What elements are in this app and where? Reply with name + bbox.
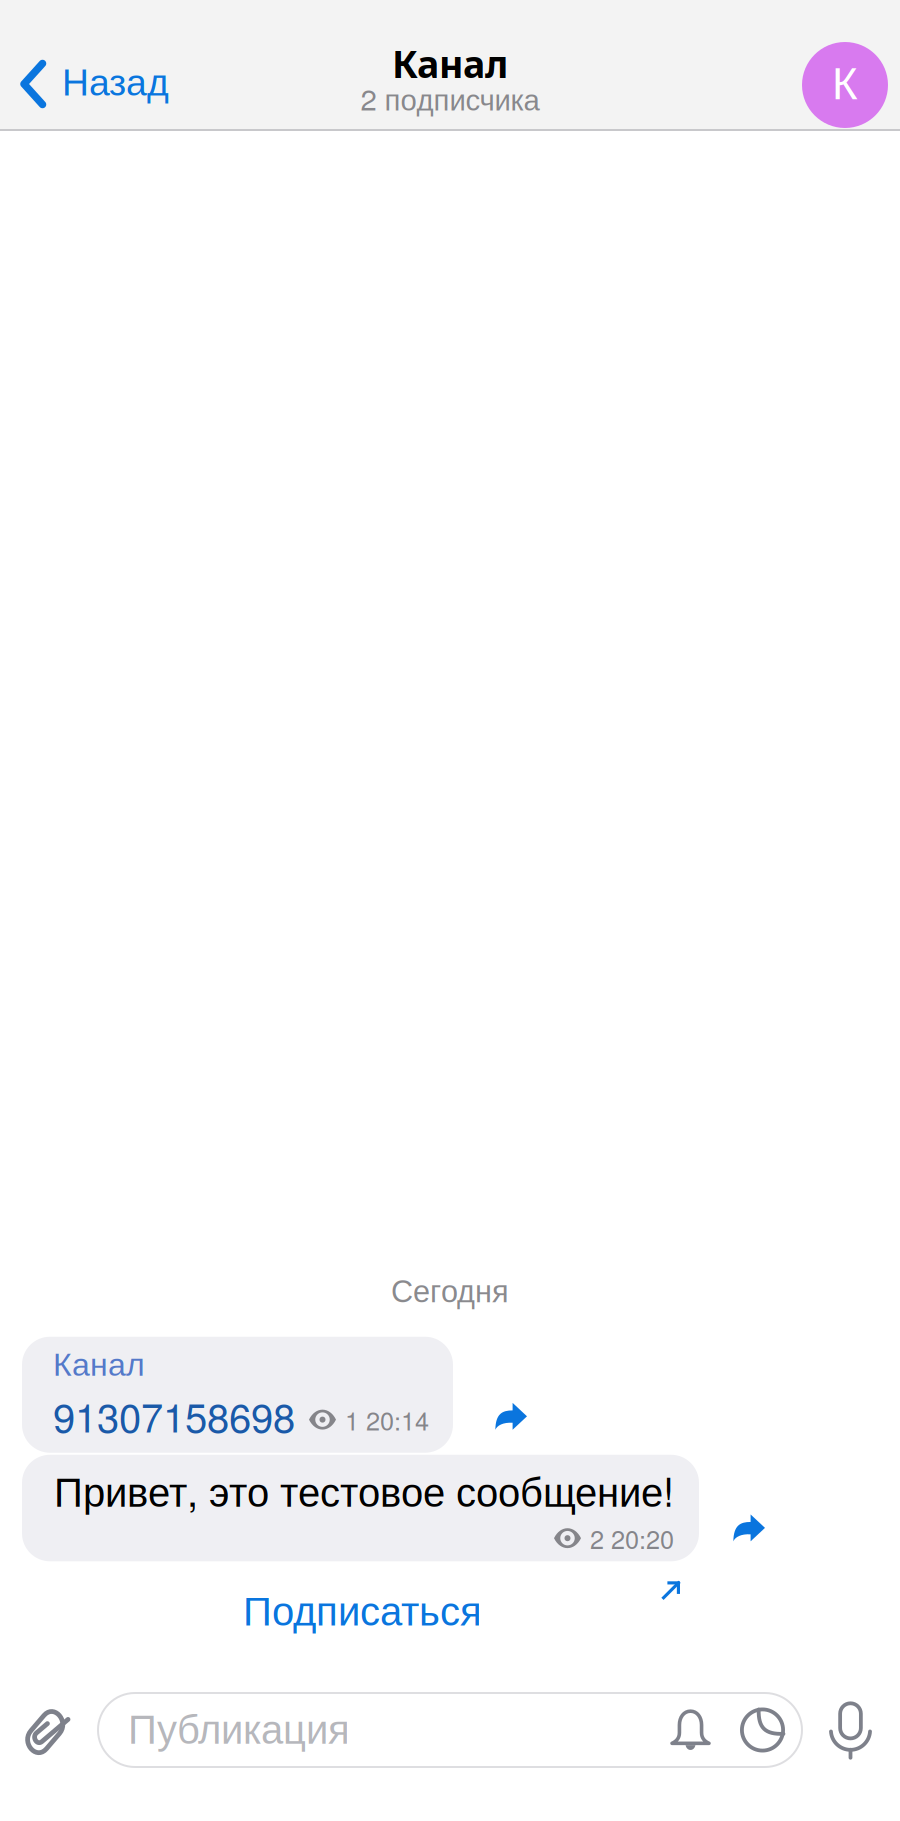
staticText: 1 20:14 <box>345 1401 429 1438</box>
staticText: Канал <box>392 38 508 89</box>
button[interactable]: Стикеры <box>725 1700 803 1759</box>
button[interactable]: Записать голосовое <box>803 1692 900 1768</box>
staticText: Публикация <box>128 1708 350 1752</box>
button[interactable]: Назад <box>0 2 187 129</box>
button[interactable]: Прикрепить <box>0 1693 97 1767</box>
staticText: Канал <box>53 1347 145 1382</box>
staticText: Подписаться <box>243 1589 482 1634</box>
staticText: Сегодня <box>391 1274 509 1309</box>
staticText: 2 подписчика <box>360 77 539 119</box>
button[interactable]: Уведомления <box>656 1700 725 1760</box>
staticText: 2 20:20 <box>590 1520 674 1556</box>
staticText: Привет, это тестовое сообщение! <box>54 1461 674 1518</box>
button[interactable]: Переслать <box>453 1391 557 1453</box>
staticText: Назад <box>62 62 169 103</box>
staticText: К <box>832 59 858 109</box>
button[interactable]: Профиль канала <box>802 3 900 128</box>
button[interactable]: Переслать <box>699 1502 795 1561</box>
staticText: 91307158698 <box>53 1386 295 1444</box>
button[interactable]: Подписаться <box>215 1563 510 1647</box>
